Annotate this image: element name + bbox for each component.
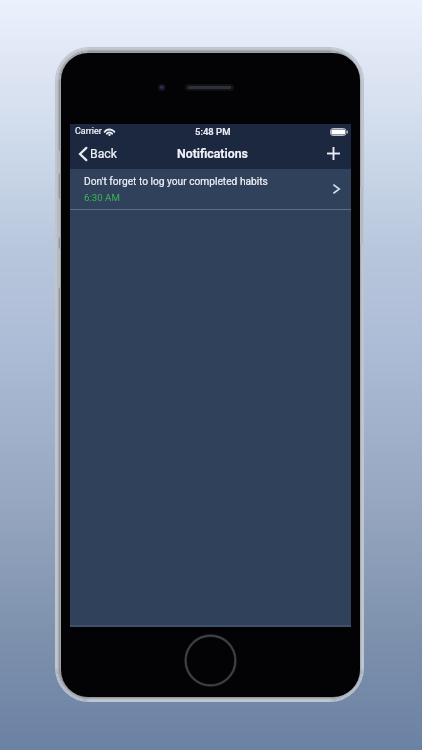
staticText: Don't forget to log your completed habit…	[84, 176, 268, 188]
staticText: Carrier	[75, 126, 102, 137]
button[interactable]: Don't forget to log your completed habit…	[70, 169, 351, 210]
staticText: Notifications	[177, 147, 248, 161]
staticText: Back	[90, 147, 118, 161]
staticText: 5:48 PM	[195, 126, 231, 137]
staticText: 6:30 AM	[84, 192, 120, 203]
button[interactable]: Add notification	[318, 142, 351, 167]
button[interactable]: Back	[70, 142, 128, 166]
